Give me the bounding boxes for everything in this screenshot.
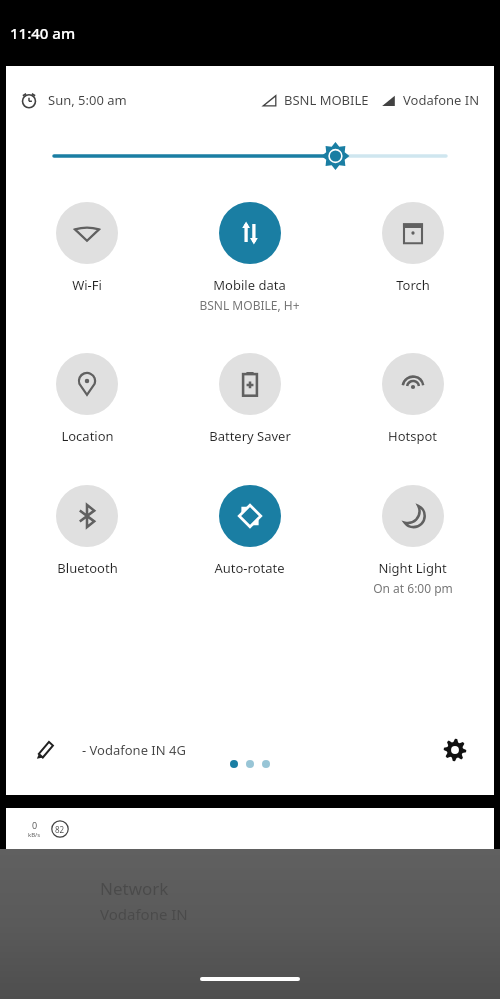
staticText: BSNL MOBILE xyxy=(284,91,369,109)
staticText: Vodafone IN xyxy=(100,904,188,924)
staticText: Location xyxy=(61,427,114,445)
staticText: Battery Saver xyxy=(209,427,291,445)
button[interactable]: Night Light xyxy=(331,483,494,598)
button[interactable]: Auto-rotate xyxy=(168,483,331,579)
staticText: Auto-rotate xyxy=(214,559,285,577)
staticText: 0 xyxy=(32,819,38,831)
button[interactable]: Bluetooth xyxy=(6,483,168,579)
button[interactable]: Edit tiles xyxy=(28,733,62,767)
staticText: Mobile data xyxy=(213,276,286,294)
staticText: 11:40 am xyxy=(10,23,76,43)
button[interactable]: Hotspot xyxy=(331,351,494,447)
button[interactable]: Brightness xyxy=(6,134,494,178)
staticText: Sun, 5:00 am xyxy=(48,91,127,109)
button[interactable]: Mobile data xyxy=(168,200,331,315)
staticText: - Vodafone IN 4G xyxy=(82,741,186,759)
staticText: On at 6:00 pm xyxy=(373,580,453,596)
staticText: Bluetooth xyxy=(57,559,118,577)
staticText: Wi-Fi xyxy=(72,276,102,294)
staticText: BSNL MOBILE, H+ xyxy=(199,297,300,313)
staticText: Hotspot xyxy=(388,427,437,445)
button[interactable]: Torch xyxy=(331,200,494,296)
staticText: Torch xyxy=(396,276,430,294)
staticText: kB/s xyxy=(28,831,41,839)
button[interactable]: Settings xyxy=(438,733,472,767)
staticText: Vodafone IN xyxy=(403,91,480,109)
staticText: Night Light xyxy=(378,559,447,577)
button[interactable]: Wi-Fi xyxy=(6,200,168,296)
staticText: Network xyxy=(100,877,169,900)
staticText: 82 xyxy=(55,824,65,835)
button[interactable]: Location xyxy=(6,351,168,447)
button[interactable]: Battery Saver xyxy=(168,351,331,447)
